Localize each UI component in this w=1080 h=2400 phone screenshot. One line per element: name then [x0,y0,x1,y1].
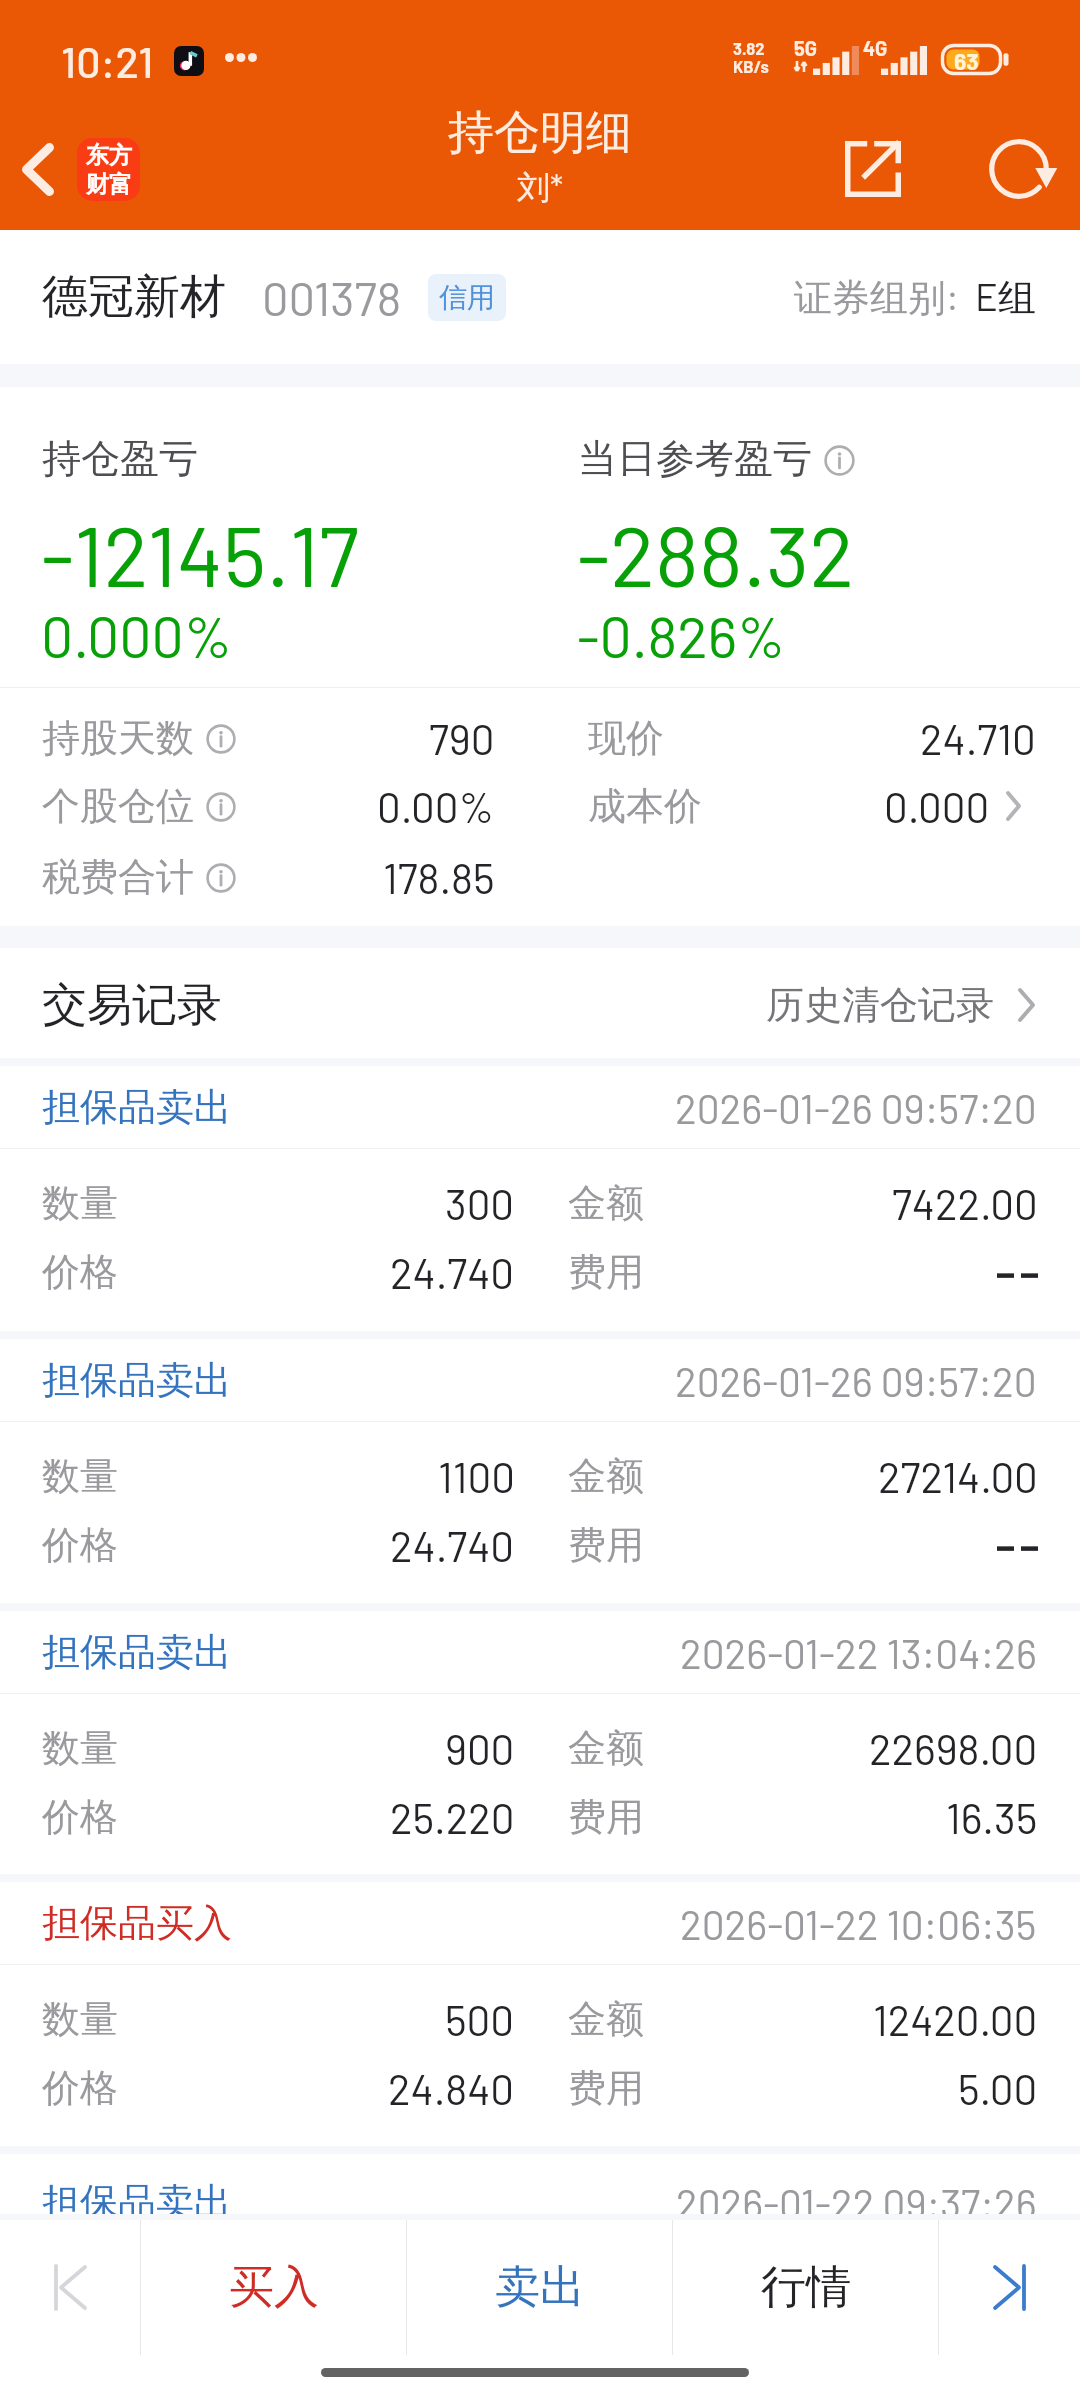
button[interactable]: Share [816,108,930,230]
staticText: 金额 [568,1724,644,1772]
staticText: 5.00 [958,2063,1038,2113]
staticText: 金额 [568,1452,644,1500]
staticText: 持仓盈亏 [42,434,198,483]
staticText: 数量 [42,1179,118,1227]
staticText: 刘* [517,166,564,209]
staticText: 费用 [568,1793,644,1841]
staticText: 持仓明细 [448,104,632,162]
staticText: 费用 [568,2064,644,2112]
button[interactable]: Refresh [958,108,1080,230]
staticText: 行情 [761,2259,851,2316]
staticText: 2026-01-26 09:57:20 [675,1356,1037,1405]
button[interactable]: 买入 [141,2220,406,2355]
staticText: 5G [794,36,818,60]
staticText: 1100 [438,1451,515,1501]
staticText: -0.826% [577,601,786,669]
staticText: 担保品卖出 [42,1356,232,1404]
button[interactable]: First page [0,2220,140,2355]
staticText: 数量 [42,1724,118,1772]
staticText: 历史清仓记录 [766,981,994,1029]
staticText: 价格 [42,2064,118,2112]
button[interactable]: Back [0,108,170,230]
staticText: -12145.17 [41,503,359,604]
staticText: 金额 [568,1995,644,2043]
staticText: 2026-01-22 09:37:26 [676,2178,1037,2227]
staticText: 16.35 [946,1792,1038,1842]
button[interactable]: 历史清仓记录 [766,967,1037,1043]
staticText: 证券组别: [794,273,959,322]
staticText: 900 [445,1723,515,1773]
staticText: 交易记录 [42,977,222,1034]
staticText: 价格 [42,1521,118,1569]
staticText: 27214.00 [878,1451,1038,1501]
staticText: 担保品买入 [42,1899,232,1947]
staticText: 7422.00 [892,1178,1038,1228]
staticText: 卖出 [495,2259,585,2316]
staticText: 担保品卖出 [42,1628,232,1676]
button[interactable]: 担保品卖出 [0,2161,1080,2243]
staticText: 数量 [42,1452,118,1500]
staticText: 东方 [86,141,132,170]
button[interactable]: 担保品卖出 [0,1611,1080,1693]
staticText: 3.82 [733,38,765,58]
staticText: 25.220 [390,1792,515,1842]
button[interactable]: 行情 [673,2220,938,2355]
staticText: 300 [445,1178,515,1228]
staticText: 001378 [262,269,402,325]
staticText: 买入 [229,2259,319,2316]
staticText: 178.85 [383,852,495,902]
staticText: 数量 [42,1995,118,2043]
staticText: 10:21 [61,35,154,87]
staticText: 24.840 [388,2063,515,2113]
staticText: 当日参考盈亏 [578,434,812,483]
button[interactable]: 担保品卖出 [0,1339,1080,1421]
button[interactable]: 担保品买入 [0,1882,1080,1964]
staticText: 2026-01-22 13:04:26 [680,1628,1037,1677]
staticText: 63 [954,47,979,75]
staticText: 信用 [439,280,495,315]
staticText: 24.740 [390,1247,515,1297]
staticText: 财富 [86,170,132,199]
staticText: 现价 [588,714,664,762]
staticText: 费用 [568,1248,644,1296]
staticText: 价格 [42,1248,118,1296]
staticText: 0.000 [884,781,990,831]
staticText: 成本价 [588,782,702,830]
staticText: KB/s [733,56,769,76]
staticText: 4G [863,36,888,60]
staticText: 2026-01-26 09:57:20 [675,1083,1037,1132]
button[interactable]: Last page [939,2220,1080,2355]
staticText: 2026-01-22 10:06:35 [680,1899,1037,1948]
staticText: 费用 [568,1521,644,1569]
staticText: 24.710 [920,713,1036,763]
button[interactable]: 担保品卖出 [0,1066,1080,1148]
staticText: 12420.00 [873,1994,1038,2044]
staticText: 金额 [568,1179,644,1227]
staticText: 持股天数 [42,714,194,762]
staticText: 德冠新材 [42,268,226,326]
staticText: -288.32 [577,503,855,604]
button[interactable]: 卖出 [407,2220,672,2355]
staticText: 税费合计 [42,853,194,901]
staticText: 担保品卖出 [42,2178,232,2226]
staticText: 22698.00 [869,1723,1038,1773]
staticText: 个股仓位 [42,782,194,830]
staticText: 0.000% [41,601,233,669]
staticText: 0.00% [377,781,495,831]
button[interactable]: 德冠新材 [0,230,1080,364]
staticText: 价格 [42,1793,118,1841]
staticText: 24.740 [390,1520,515,1570]
staticText: 担保品卖出 [42,1083,232,1131]
staticText: 500 [445,1994,515,2044]
staticText: E组 [975,273,1036,322]
staticText: 790 [429,713,495,763]
